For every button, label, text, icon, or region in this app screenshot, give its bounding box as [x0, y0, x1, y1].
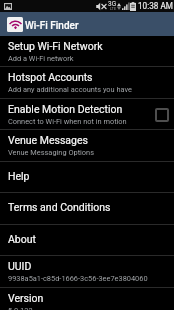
- button[interactable]: Hotspot Accounts: [0, 67, 174, 99]
- staticText: 5.0.132: [8, 306, 33, 310]
- button[interactable]: Enable Motion Detection: [0, 99, 174, 130]
- staticText: Add a Wi-Fi network: [8, 54, 74, 63]
- staticText: Wi-Fi Finder: [25, 20, 79, 32]
- other: Enable Motion Detection checkbox: [155, 108, 169, 122]
- staticText: UUID: [8, 260, 32, 272]
- button[interactable]: UUID: [0, 256, 174, 288]
- button[interactable]: Setup Wi-Fi Network: [0, 36, 174, 67]
- staticText: Version: [8, 292, 44, 304]
- staticText: 3G: [108, 0, 117, 8]
- staticText: Connect to Wi-Fi when not in motion: [8, 117, 127, 126]
- staticText: Venue Messaging Options: [8, 148, 94, 157]
- button[interactable]: About: [0, 225, 174, 256]
- staticText: Setup Wi-Fi Network: [8, 40, 103, 52]
- staticText: 9938a5a1-c85d-1666-3c56-3ee7e3804060: [8, 274, 148, 283]
- staticText: About: [8, 233, 36, 245]
- staticText: Terms and Conditions: [8, 201, 111, 213]
- button[interactable]: Venue Messages: [0, 130, 174, 162]
- staticText: LTE: [110, 6, 117, 11]
- staticText: Enable Motion Detection: [8, 103, 123, 115]
- staticText: Help: [8, 170, 30, 182]
- button[interactable]: Version: [0, 288, 174, 310]
- button[interactable]: Terms and Conditions: [0, 193, 174, 225]
- staticText: Hotspot Accounts: [8, 71, 93, 83]
- staticText: Venue Messages: [8, 134, 88, 146]
- staticText: Add any additional accounts you have: [8, 85, 132, 94]
- staticText: 10:38 AM: [138, 1, 173, 11]
- button[interactable]: Help: [0, 162, 174, 193]
